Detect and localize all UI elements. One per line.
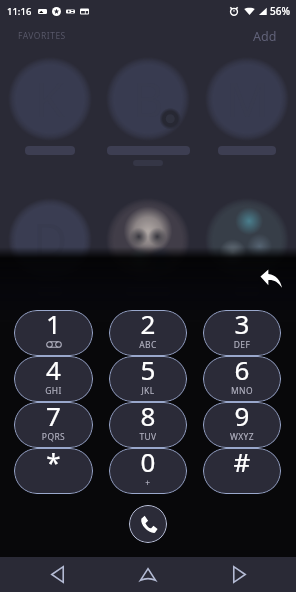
- button[interactable]: 4: [14, 356, 93, 402]
- staticText: 5: [109, 356, 187, 387]
- button[interactable]: 3: [203, 310, 281, 356]
- button[interactable]: D: [1, 198, 99, 296]
- button[interactable]: Backspace: [257, 264, 285, 292]
- staticText: +: [109, 477, 187, 489]
- staticText: 0: [109, 448, 187, 479]
- staticText: 6: [203, 356, 281, 387]
- button[interactable]: Recents: [217, 558, 261, 591]
- button[interactable]: [198, 198, 296, 296]
- button[interactable]: 6: [203, 356, 281, 402]
- button[interactable]: Back: [35, 558, 79, 591]
- staticText: 8: [109, 402, 187, 433]
- staticText: GHI: [14, 385, 93, 397]
- staticText: ABC: [109, 339, 187, 351]
- button[interactable]: 1: [14, 310, 93, 356]
- button[interactable]: 0: [109, 448, 187, 494]
- button[interactable]: B: [99, 57, 197, 166]
- button[interactable]: *: [14, 448, 93, 494]
- staticText: MNO: [203, 385, 281, 397]
- button[interactable]: M: [198, 57, 296, 155]
- staticText: WXYZ: [203, 431, 281, 443]
- staticText: PQRS: [14, 431, 93, 443]
- staticText: 9: [203, 402, 281, 433]
- button[interactable]: K: [1, 57, 99, 155]
- staticText: Add: [253, 28, 277, 45]
- staticText: B: [133, 67, 164, 131]
- staticText: 3: [203, 310, 281, 341]
- button[interactable]: [99, 198, 197, 296]
- staticText: 2: [109, 310, 187, 341]
- staticText: *: [14, 448, 93, 479]
- staticText: 7: [14, 402, 93, 433]
- staticText: DEF: [203, 339, 281, 351]
- button[interactable]: 5: [109, 356, 187, 402]
- staticText: D: [33, 208, 68, 272]
- button[interactable]: 9: [203, 402, 281, 448]
- button[interactable]: 2: [109, 310, 187, 356]
- staticText: 11:16: [7, 5, 32, 18]
- button[interactable]: 8: [109, 402, 187, 448]
- staticText: 4: [14, 356, 93, 387]
- staticText: FAVORITES: [18, 30, 66, 42]
- button[interactable]: Call: [129, 505, 167, 543]
- staticText: JKL: [109, 385, 187, 397]
- button[interactable]: #: [203, 448, 281, 494]
- staticText: 1: [14, 310, 93, 341]
- button[interactable]: 7: [14, 402, 93, 448]
- button[interactable]: Home: [126, 558, 170, 591]
- staticText: #: [203, 448, 281, 479]
- staticText: TUV: [109, 431, 187, 443]
- staticText: 56%: [270, 4, 290, 18]
